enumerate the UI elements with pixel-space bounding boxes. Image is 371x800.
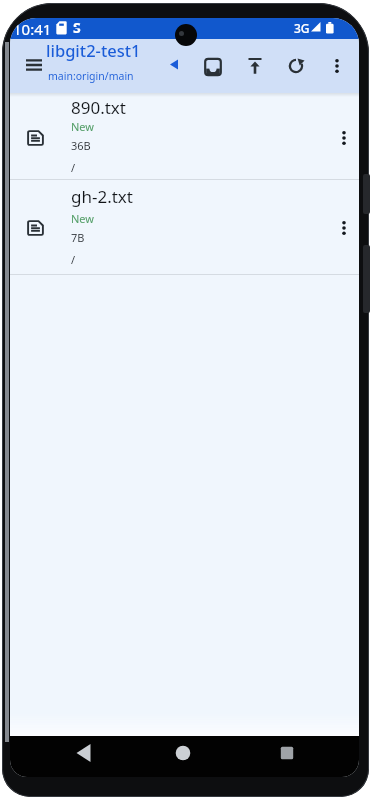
staticText: gh-2.txt (71, 185, 133, 208)
button[interactable] (276, 46, 316, 86)
button[interactable] (317, 46, 357, 86)
button[interactable] (163, 733, 203, 773)
staticText: 36B (71, 138, 91, 153)
staticText: 7B (71, 230, 85, 245)
button[interactable] (193, 47, 233, 87)
button[interactable] (235, 47, 275, 87)
button[interactable]: 890.txt (10, 93, 359, 179)
button[interactable] (324, 208, 359, 248)
staticText: libgit2-test1 (46, 39, 141, 61)
staticText: 890.txt (71, 96, 126, 119)
staticText: 10:41 (13, 19, 52, 39)
button[interactable] (324, 118, 359, 158)
staticText: / (71, 252, 76, 267)
staticText: main:origin/main (48, 69, 134, 83)
button[interactable] (65, 733, 105, 773)
staticText: 3G (294, 20, 310, 36)
staticText: / (71, 160, 76, 175)
button[interactable]: gh-2.txt (10, 180, 359, 274)
button[interactable] (14, 45, 54, 85)
staticText: New (71, 211, 94, 226)
staticText: New (71, 119, 94, 134)
button[interactable] (267, 733, 307, 773)
staticText: S (73, 18, 81, 37)
